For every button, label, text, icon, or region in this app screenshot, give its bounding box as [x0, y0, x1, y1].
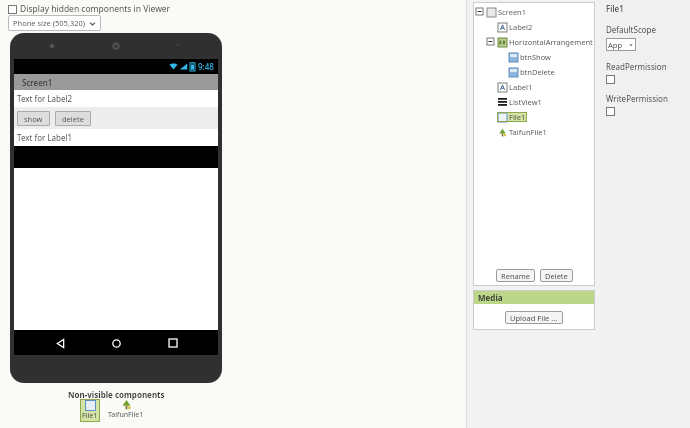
- staticText: Label2: [509, 22, 533, 32]
- staticText: Upload File ...: [510, 313, 558, 323]
- staticText: TaifunFile1: [108, 410, 144, 420]
- staticText: Display hidden components in Viewer: [20, 3, 171, 15]
- staticText: Text for Label1: [17, 132, 73, 143]
- staticText: delete: [62, 114, 84, 124]
- button[interactable]: Display hidden components in Viewer: [8, 3, 171, 15]
- staticText: btnShow: [520, 52, 551, 62]
- staticText: TaifunFile1: [509, 127, 547, 137]
- staticText: File1: [509, 112, 526, 122]
- staticText: App: [608, 40, 623, 50]
- button[interactable]: btnShow: [473, 49, 595, 64]
- staticText: WritePermission: [606, 93, 668, 104]
- button[interactable]: TaifunFile1: [108, 399, 144, 420]
- staticText: Delete: [545, 271, 568, 281]
- button[interactable]: Text for Label1: [14, 129, 218, 146]
- button[interactable]: Home: [105, 332, 127, 354]
- button[interactable]: TaifunFile1: [473, 124, 595, 139]
- staticText: Non-visible components: [68, 389, 165, 400]
- staticText: Phone size (505,320): [13, 18, 86, 28]
- button[interactable]: Back: [49, 332, 71, 354]
- button[interactable]: ListView1: [473, 94, 595, 109]
- staticText: Rename: [501, 271, 530, 281]
- button[interactable]: Recent apps: [162, 332, 184, 354]
- staticText: DefaultScope: [606, 24, 656, 35]
- button[interactable]: btnDelete: [473, 64, 595, 79]
- staticText: show: [24, 114, 43, 124]
- button[interactable]: Screen1: [14, 74, 218, 90]
- button[interactable]: File1: [473, 109, 595, 124]
- staticText: ListView1: [509, 97, 542, 107]
- staticText: btnDelete: [520, 67, 555, 77]
- button[interactable]: Phone size (505,320): [8, 15, 101, 31]
- button[interactable]: Delete: [540, 269, 573, 282]
- button[interactable]: Text for Label2: [14, 90, 218, 107]
- button[interactable]: Rename: [496, 269, 535, 282]
- staticText: Screen1: [498, 7, 527, 17]
- staticText: ReadPermission: [606, 61, 667, 72]
- button[interactable]: WritePermission checkbox: [606, 107, 615, 116]
- staticText: Label1: [509, 82, 533, 92]
- staticText: File1: [82, 411, 98, 421]
- button[interactable]: Upload File ...: [505, 311, 563, 324]
- button[interactable]: App: [606, 38, 636, 51]
- staticText: Media: [478, 292, 503, 303]
- button[interactable]: Label1: [473, 79, 595, 94]
- button[interactable]: Label2: [473, 19, 595, 34]
- staticText: 9:48: [198, 61, 214, 72]
- button[interactable]: ReadPermission checkbox: [606, 75, 615, 84]
- button[interactable]: show: [17, 111, 50, 126]
- button[interactable]: delete: [55, 111, 91, 126]
- staticText: Text for Label2: [17, 93, 73, 104]
- button[interactable]: Screen1: [473, 4, 595, 19]
- staticText: HorizontalArrangement1: [509, 37, 594, 47]
- staticText: Screen1: [22, 77, 53, 88]
- button[interactable]: HorizontalArrangement1: [473, 34, 595, 49]
- staticText: File1: [606, 3, 624, 14]
- button[interactable]: File1: [82, 400, 98, 421]
